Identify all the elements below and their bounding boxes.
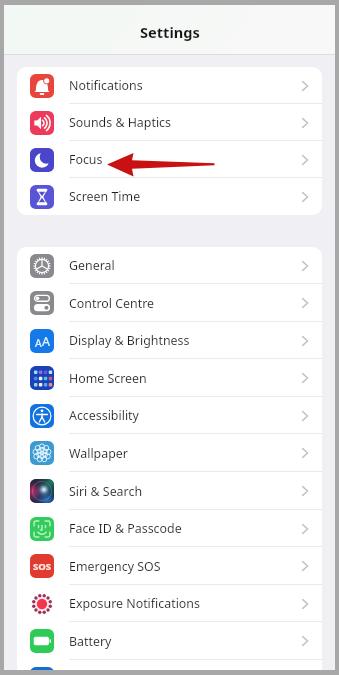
staticText: Control Centre — [69, 295, 155, 312]
staticText: Battery — [69, 633, 112, 650]
staticText: Display & Brightness — [69, 332, 190, 349]
staticText: Siri & Search — [69, 483, 143, 500]
staticText: Exposure Notifications — [69, 595, 200, 612]
button[interactable]: Accessibility — [17, 397, 322, 434]
button[interactable]: Home Screen — [17, 359, 322, 397]
staticText: SOS — [33, 560, 52, 573]
button[interactable]: Sounds & Haptics — [17, 104, 322, 141]
staticText: Settings — [140, 22, 200, 42]
staticText: A — [35, 336, 42, 350]
staticText: Emergency SOS — [69, 558, 161, 575]
button[interactable]: Focus — [17, 141, 322, 178]
button[interactable]: Control Centre — [17, 284, 322, 322]
button[interactable]: SOS — [17, 547, 322, 585]
staticText: General — [69, 257, 115, 274]
staticText: Wallpaper — [69, 445, 128, 462]
staticText: Screen Time — [69, 188, 141, 205]
button[interactable]: Battery — [17, 622, 322, 660]
button[interactable]: Face ID & Passcode — [17, 510, 322, 547]
button[interactable]: Privacy & Security — [17, 660, 322, 670]
button[interactable]: Exposure Notifications — [17, 585, 322, 622]
staticText: Accessibility — [69, 407, 139, 424]
button[interactable]: Notifications — [17, 67, 322, 104]
staticText: A — [42, 333, 50, 350]
button[interactable]: Siri & Search — [17, 472, 322, 510]
button[interactable]: Wallpaper — [17, 434, 322, 472]
staticText: Sounds & Haptics — [69, 114, 171, 131]
button[interactable]: General — [17, 247, 322, 284]
staticText: Focus — [69, 151, 103, 168]
staticText: Face ID & Passcode — [69, 520, 182, 537]
staticText: Notifications — [69, 77, 143, 94]
staticText: Home Screen — [69, 370, 147, 387]
button[interactable]: Screen Time — [17, 178, 322, 215]
button[interactable]: A — [17, 322, 322, 359]
